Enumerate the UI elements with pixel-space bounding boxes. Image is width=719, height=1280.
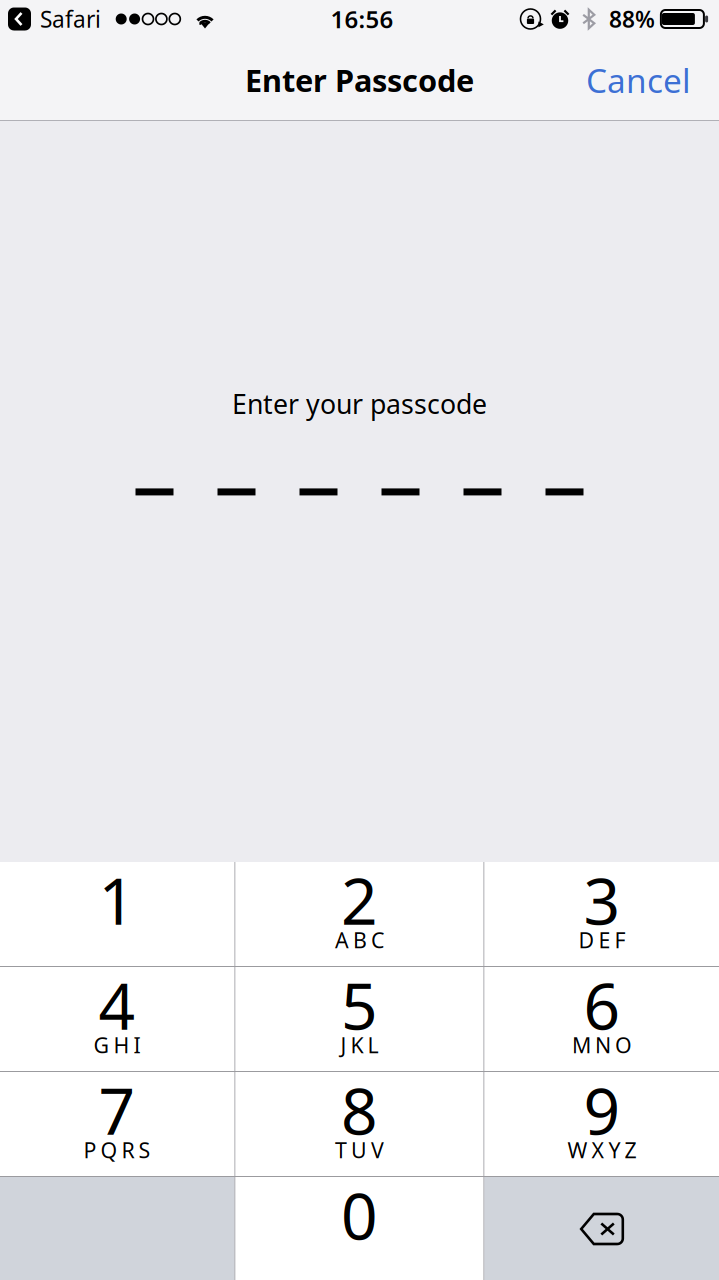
staticText: 1: [98, 857, 135, 942]
staticText: 8: [341, 1067, 378, 1152]
staticText: Safari: [40, 4, 101, 34]
button[interactable]: 8: [235, 1072, 483, 1176]
button[interactable]: 5: [235, 967, 483, 1071]
staticText: 6: [583, 962, 620, 1047]
button[interactable]: 9: [484, 1072, 719, 1176]
button[interactable]: Delete: [484, 1177, 719, 1280]
button[interactable]: 6: [484, 967, 719, 1071]
staticText: 4: [98, 962, 135, 1047]
staticText: 9: [583, 1067, 620, 1152]
staticText: Enter Passcode: [245, 60, 474, 100]
button[interactable]: 3: [484, 862, 719, 966]
staticText: 2: [341, 857, 378, 942]
staticText: D E F: [578, 926, 625, 954]
staticText: P Q R S: [83, 1136, 150, 1164]
button[interactable]: 4: [0, 967, 234, 1071]
staticText: 3: [583, 857, 620, 942]
staticText: M N O: [572, 1031, 632, 1059]
staticText: Enter your passcode: [232, 386, 487, 421]
staticText: G H I: [93, 1031, 140, 1059]
staticText: 88%: [609, 4, 655, 34]
staticText: A B C: [335, 926, 384, 954]
staticText: Cancel: [586, 58, 691, 102]
staticText: 16:56: [330, 3, 393, 35]
button[interactable]: 2: [235, 862, 483, 966]
staticText: J K L: [340, 1031, 378, 1059]
button[interactable]: Cancel: [570, 39, 707, 121]
staticText: T U V: [335, 1136, 384, 1164]
staticText: 7: [98, 1067, 135, 1152]
button[interactable]: 1: [0, 862, 234, 966]
button[interactable]: 0: [235, 1177, 483, 1280]
button[interactable]: 7: [0, 1072, 234, 1176]
staticText: 0: [341, 1172, 378, 1257]
staticText: W X Y Z: [567, 1136, 636, 1164]
staticText: 5: [341, 962, 378, 1047]
